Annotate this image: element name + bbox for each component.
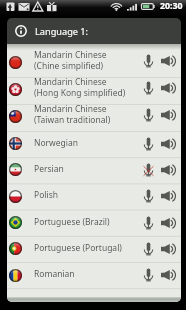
button[interactable]: Record with microphone	[140, 240, 156, 258]
button[interactable]: Play pronunciation	[160, 187, 178, 205]
button[interactable]: Play pronunciation	[160, 240, 178, 258]
button[interactable]: Language 1:	[7, 18, 181, 44]
button[interactable]: Play pronunciation	[160, 52, 178, 70]
button[interactable]: Record with microphone	[140, 266, 156, 284]
button[interactable]: Record with microphone	[140, 135, 156, 153]
staticText: Portuguese (Portugal)	[34, 242, 122, 254]
staticText: Mandarin Chinese	[34, 103, 107, 115]
button[interactable]: Record with microphone	[140, 187, 156, 205]
button[interactable]: Mandarin Chinese	[7, 77, 181, 104]
button[interactable]: Portuguese (Portugal)	[7, 236, 181, 262]
button[interactable]: Record with microphone	[140, 52, 156, 70]
staticText: (Hong Kong simplified)	[34, 87, 126, 99]
staticText: (Taiwan traditional)	[34, 114, 111, 126]
button[interactable]: Record with microphone	[140, 79, 156, 97]
button[interactable]: Record with microphone	[140, 161, 156, 179]
button[interactable]: Record with microphone	[140, 106, 156, 124]
button[interactable]: Play pronunciation	[160, 214, 178, 232]
staticText: Language 1:	[35, 25, 89, 38]
staticText: Polish	[34, 189, 58, 201]
staticText: Persian	[34, 163, 64, 175]
button[interactable]: Play pronunciation	[160, 161, 178, 179]
staticText: Norwegian	[34, 137, 79, 149]
button[interactable]: Play pronunciation	[160, 106, 178, 124]
button[interactable]: Persian	[7, 157, 181, 183]
button[interactable]: Portuguese (Brazil)	[7, 210, 181, 236]
staticText: 20:30	[160, 0, 183, 12]
button[interactable]: Record with microphone	[140, 214, 156, 232]
button[interactable]: Play pronunciation	[160, 266, 178, 284]
button[interactable]: Play pronunciation	[160, 135, 178, 153]
staticText: Portuguese (Brazil)	[34, 216, 110, 228]
staticText: (Chine simplified)	[34, 60, 104, 72]
button[interactable]: Polish	[7, 183, 181, 209]
staticText: Romanian	[34, 268, 75, 280]
button[interactable]: Play pronunciation	[160, 79, 178, 97]
staticText: Mandarin Chinese	[34, 49, 107, 61]
button[interactable]: Romanian	[7, 262, 181, 288]
button[interactable]: Mandarin Chinese	[7, 104, 181, 131]
button[interactable]: Norwegian	[7, 131, 181, 157]
staticText: Mandarin Chinese	[34, 76, 107, 88]
button[interactable]: Mandarin Chinese	[7, 50, 181, 77]
